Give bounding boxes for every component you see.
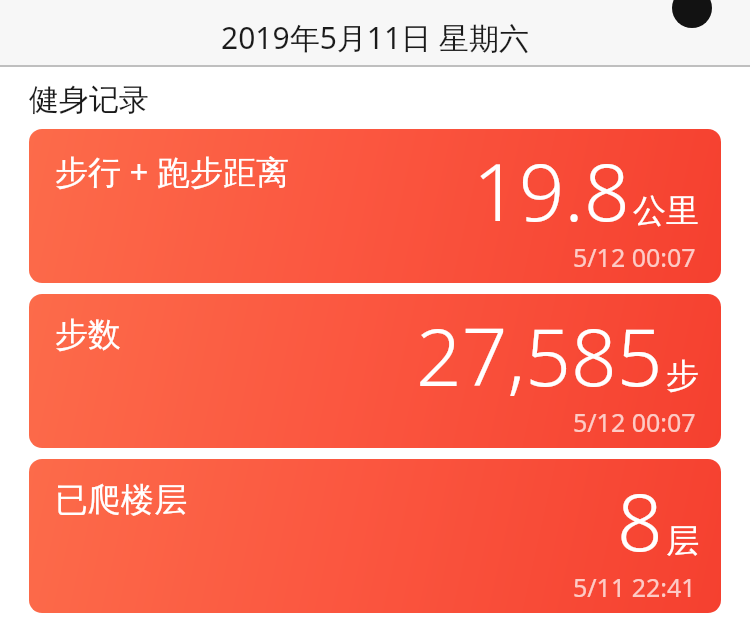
- staticText: 层: [666, 520, 699, 562]
- staticText: 公里: [633, 190, 699, 232]
- staticText: 已爬楼层: [55, 479, 187, 521]
- staticText: 步数: [55, 314, 121, 356]
- staticText: 步行 + 跑步距离: [55, 149, 290, 194]
- staticText: 5/11 22:41: [573, 570, 696, 604]
- staticText: 健身记录: [29, 81, 149, 119]
- staticText: 8: [617, 465, 663, 574]
- button[interactable]: 步数: [29, 294, 721, 448]
- staticText: 5/12 00:07: [573, 240, 696, 274]
- button[interactable]: 健身记录: [0, 67, 750, 129]
- staticText: 步: [666, 355, 699, 397]
- staticText: 5/12 00:07: [573, 405, 696, 439]
- staticText: 27,585: [416, 300, 663, 409]
- staticText: 2019年5月11日 星期六: [221, 17, 529, 58]
- staticText: 19.8: [473, 135, 630, 244]
- button[interactable]: 已爬楼层: [29, 459, 721, 613]
- button[interactable]: 2019年5月11日 星期六: [0, 0, 750, 67]
- button[interactable]: 步行 + 跑步距离: [29, 129, 721, 283]
